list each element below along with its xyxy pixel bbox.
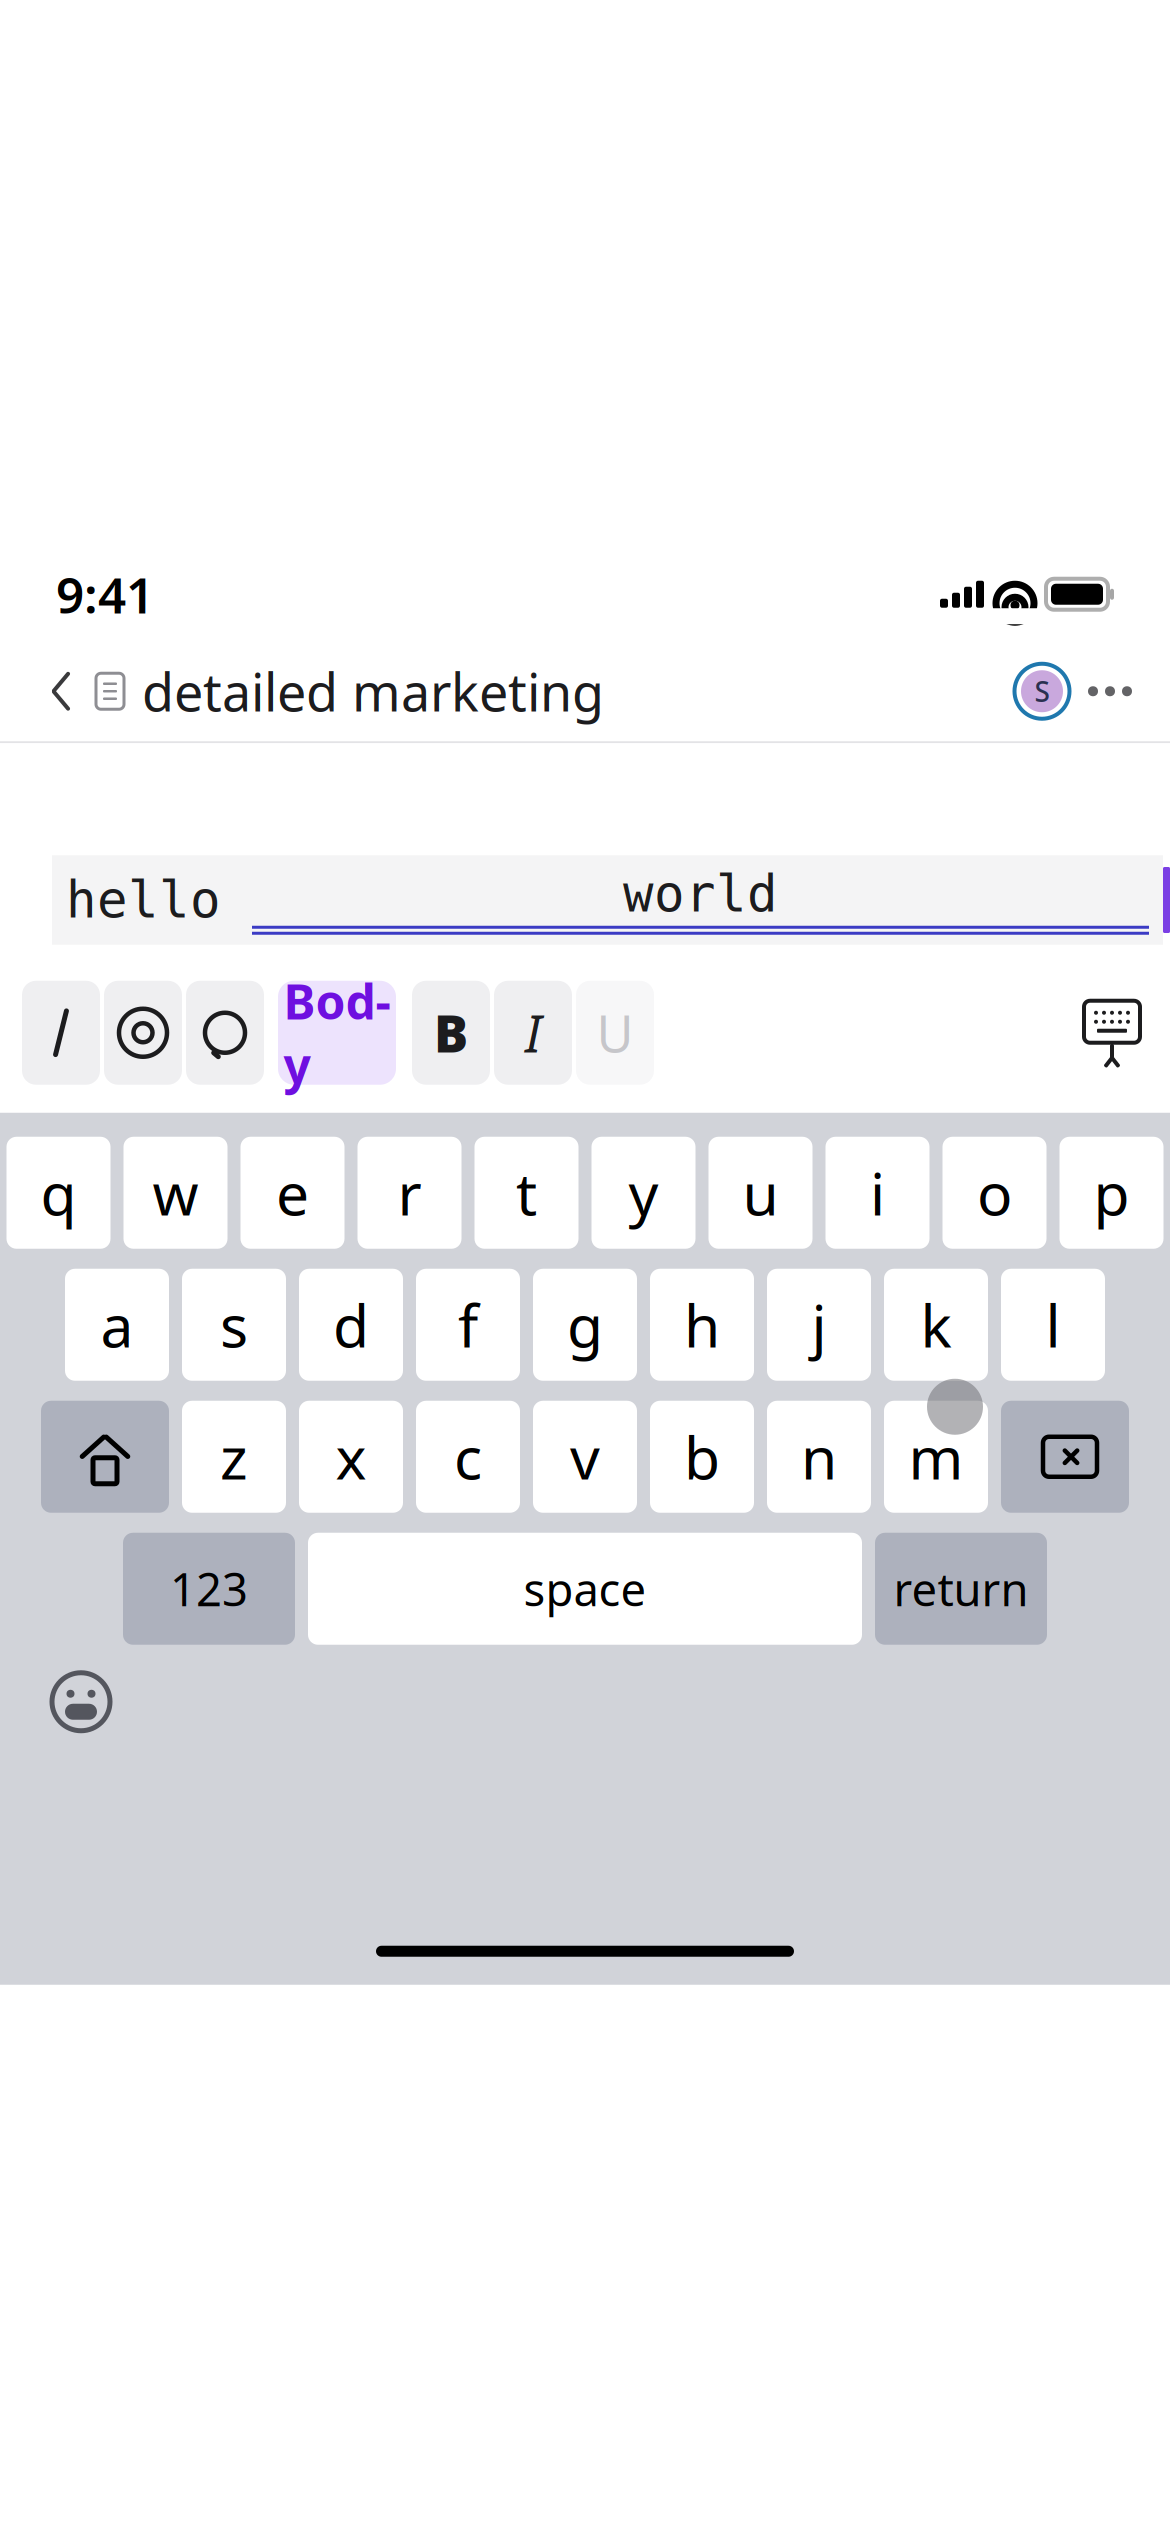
staticText: m xyxy=(908,1418,963,1496)
button[interactable]: space xyxy=(308,1533,862,1645)
staticText: 123 xyxy=(170,1559,248,1619)
button[interactable]: detailed marketing xyxy=(96,641,604,742)
button[interactable]: k xyxy=(884,1269,988,1381)
button[interactable]: s xyxy=(182,1269,286,1381)
button[interactable]: Italic xyxy=(494,981,572,1085)
button[interactable]: Shift xyxy=(41,1401,169,1513)
staticText: f xyxy=(458,1286,478,1364)
staticText: e xyxy=(276,1154,309,1232)
button[interactable]: p xyxy=(1059,1137,1163,1249)
button[interactable]: o xyxy=(942,1137,1046,1249)
staticText: n xyxy=(801,1418,837,1496)
button[interactable]: Hide keyboard xyxy=(1082,1000,1142,1066)
staticText: s xyxy=(220,1286,248,1364)
staticText: w xyxy=(152,1154,198,1232)
staticText: S xyxy=(1034,673,1049,710)
staticText: o xyxy=(977,1154,1012,1232)
staticText: j xyxy=(811,1286,826,1364)
button[interactable]: i xyxy=(825,1137,929,1249)
button[interactable]: z xyxy=(182,1401,286,1513)
button[interactable]: l xyxy=(1001,1269,1105,1381)
button[interactable]: Shared with S xyxy=(1012,661,1072,721)
button[interactable]: g xyxy=(533,1269,637,1381)
staticText: a xyxy=(100,1286,133,1364)
button[interactable]: a xyxy=(65,1269,169,1381)
staticText: c xyxy=(454,1418,482,1496)
button[interactable]: Emoji xyxy=(46,1667,116,1737)
staticText: U xyxy=(596,999,633,1066)
button[interactable]: n xyxy=(767,1401,871,1513)
staticText: z xyxy=(220,1418,248,1496)
staticText: B xyxy=(434,999,468,1066)
staticText: i xyxy=(870,1154,885,1232)
button[interactable]: More options xyxy=(1072,669,1140,713)
staticText: return xyxy=(893,1559,1028,1619)
button[interactable]: Underline xyxy=(576,981,654,1085)
button[interactable]: y xyxy=(591,1137,695,1249)
staticText: l xyxy=(1045,1286,1060,1364)
staticText: Body xyxy=(283,969,390,1096)
staticText: g xyxy=(567,1286,603,1364)
button[interactable]: Mention xyxy=(104,981,182,1085)
button[interactable]: f xyxy=(416,1269,520,1381)
staticText: v xyxy=(570,1418,600,1496)
button[interactable]: r xyxy=(357,1137,461,1249)
staticText: 9:41 xyxy=(56,561,154,627)
button[interactable]: j xyxy=(767,1269,871,1381)
staticText: p xyxy=(1093,1154,1129,1232)
button[interactable]: d xyxy=(299,1269,403,1381)
staticText: detailed marketing xyxy=(142,657,604,726)
staticText: u xyxy=(742,1154,778,1232)
staticText: space xyxy=(523,1559,646,1619)
button[interactable]: Body xyxy=(278,981,396,1085)
button[interactable]: Bold xyxy=(412,981,490,1085)
button[interactable]: c xyxy=(416,1401,520,1513)
staticText: hello xyxy=(66,871,252,929)
staticText: q xyxy=(40,1154,76,1232)
button[interactable]: Back xyxy=(26,651,96,731)
button[interactable]: Comment xyxy=(186,981,264,1085)
staticText: x xyxy=(335,1418,366,1496)
button[interactable]: u xyxy=(708,1137,812,1249)
button[interactable]: return xyxy=(875,1533,1047,1645)
button[interactable]: Insert block xyxy=(22,981,100,1085)
staticText: d xyxy=(333,1286,369,1364)
button[interactable]: e xyxy=(240,1137,344,1249)
button[interactable]: x xyxy=(299,1401,403,1513)
button[interactable]: h xyxy=(650,1269,754,1381)
staticText: I xyxy=(525,999,541,1066)
staticText: t xyxy=(516,1154,537,1232)
staticText: b xyxy=(684,1418,720,1496)
staticText: k xyxy=(920,1286,951,1364)
staticText: y xyxy=(628,1154,658,1232)
staticText: world xyxy=(623,865,778,923)
button[interactable]: 123 xyxy=(123,1533,295,1645)
button[interactable]: t xyxy=(474,1137,578,1249)
staticText: h xyxy=(684,1286,720,1364)
button[interactable]: m xyxy=(884,1401,988,1513)
button[interactable]: Delete xyxy=(1001,1401,1129,1513)
button[interactable]: w xyxy=(123,1137,227,1249)
button[interactable]: b xyxy=(650,1401,754,1513)
button[interactable]: q xyxy=(6,1137,110,1249)
button[interactable]: v xyxy=(533,1401,637,1513)
staticText: r xyxy=(397,1154,421,1232)
